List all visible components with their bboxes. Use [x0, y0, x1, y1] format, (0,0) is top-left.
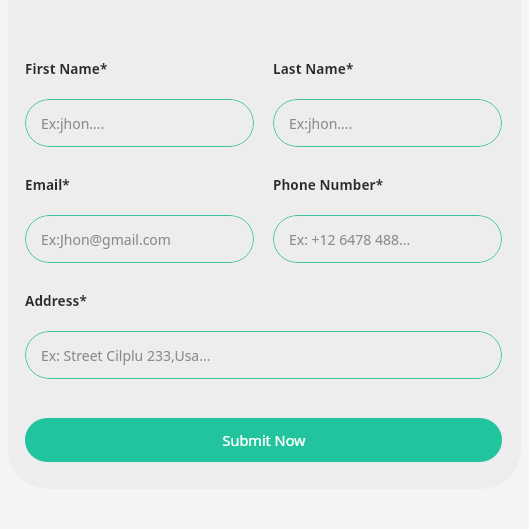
button[interactable]: Ex:jhon....	[273, 99, 502, 147]
staticText: First Name*	[25, 60, 108, 78]
staticText: Submit Now	[222, 430, 306, 450]
staticText: Email*	[25, 176, 70, 194]
button[interactable]: Submit Now	[25, 418, 502, 462]
staticText: Ex:Jhon@gmail.com	[41, 230, 171, 249]
staticText: Ex:jhon....	[41, 114, 105, 133]
button[interactable]: Ex: Street Cilplu 233,Usa...	[25, 331, 502, 379]
staticText: Phone Number*	[273, 176, 384, 194]
button[interactable]: Ex:Jhon@gmail.com	[25, 215, 254, 263]
staticText: Ex: Street Cilplu 233,Usa...	[41, 346, 211, 365]
button[interactable]: Ex: +12 6478 488...	[273, 215, 502, 263]
staticText: Last Name*	[273, 60, 354, 78]
staticText: Address*	[25, 292, 87, 310]
staticText: Ex: +12 6478 488...	[289, 230, 411, 249]
staticText: Ex:jhon....	[289, 114, 353, 133]
button[interactable]: Ex:jhon....	[25, 99, 254, 147]
